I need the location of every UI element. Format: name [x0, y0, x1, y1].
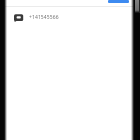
staticText: +141545566	[29, 14, 59, 21]
button[interactable]: +141545566	[14, 12, 59, 22]
